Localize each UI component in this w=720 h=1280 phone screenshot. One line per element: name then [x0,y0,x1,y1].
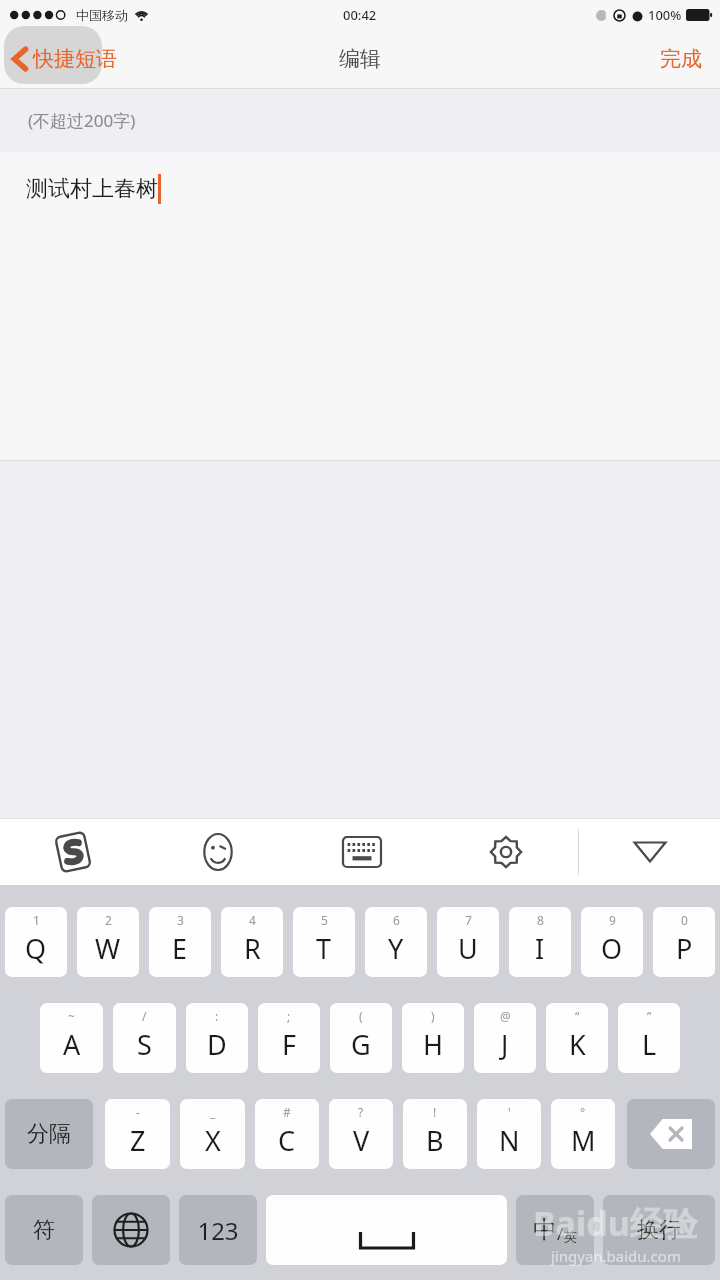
button[interactable]: ~ [40,1003,103,1073]
staticText: I [535,930,545,967]
staticText: F [282,1026,297,1063]
staticText: 123 [197,1214,239,1247]
button[interactable]: ” [618,1003,680,1073]
staticText: 快捷短语 [33,46,117,72]
staticText: 编辑 [339,46,381,72]
staticText: P [676,930,693,967]
button[interactable]: # [255,1099,319,1169]
staticText: 符 [33,1216,55,1244]
staticText: Y [388,930,404,967]
button[interactable]: 8 [509,907,571,977]
staticText: 中 [533,1215,557,1245]
staticText: 00:42 [343,6,377,24]
staticText: ° [580,1104,586,1120]
staticText: / [142,1008,147,1024]
staticText: N [499,1122,520,1159]
staticText: L [642,1026,657,1063]
button[interactable]: 7 [437,907,499,977]
button[interactable]: “ [546,1003,608,1073]
staticText: 8 [537,912,544,928]
staticText: 7 [465,912,472,928]
button[interactable]: 3 [149,907,211,977]
staticText: Z [130,1122,146,1159]
staticText: 测试村上春树 [26,175,158,203]
staticText: 英 [564,1228,577,1244]
button[interactable]: ; [258,1003,320,1073]
staticText: E [172,930,188,967]
staticText: O [601,930,623,967]
button[interactable]: 符 [5,1195,83,1265]
button[interactable]: Space [266,1195,507,1265]
staticText: ; [287,1008,291,1024]
staticText: U [458,930,478,967]
button[interactable]: Hide keyboard [579,819,720,885]
staticText: @ [500,1008,511,1024]
staticText: ” [647,1008,652,1024]
staticText: 6 [393,912,400,928]
staticText: (不超过200字) [28,109,136,132]
staticText: K [569,1026,586,1063]
button[interactable]: _ [180,1099,245,1169]
staticText: 0 [681,912,688,928]
staticText: 分隔 [27,1120,71,1148]
button[interactable]: Settings [434,819,578,885]
staticText: C [278,1122,296,1159]
staticText: Q [25,930,47,967]
button[interactable]: 分隔 [5,1099,93,1169]
button[interactable]: 9 [581,907,643,977]
button[interactable]: 中 [516,1195,594,1265]
button[interactable]: @ [474,1003,536,1073]
staticText: / [557,1222,564,1245]
button[interactable]: Backspace [627,1099,715,1169]
button[interactable]: / [113,1003,176,1073]
button[interactable]: ° [551,1099,615,1169]
staticText: “ [575,1008,580,1024]
button[interactable]: 完成 [642,38,720,80]
staticText: Baidu经验 [533,1200,698,1246]
staticText: 3 [177,912,184,928]
staticText: J [501,1026,509,1063]
staticText: 中国移动 [76,7,128,23]
button[interactable]: ' [477,1099,541,1169]
staticText: W [95,930,121,967]
staticText: A [63,1026,81,1063]
button[interactable]: ) [402,1003,464,1073]
button[interactable]: Keyboard [290,819,434,885]
staticText: T [316,930,332,967]
staticText: 换行 [637,1216,681,1244]
button[interactable]: Emoji [146,819,290,885]
button[interactable]: 5 [293,907,355,977]
staticText: ? [358,1104,364,1120]
button[interactable]: 2 [77,907,139,977]
staticText: 2 [105,912,112,928]
staticText: 5 [321,912,328,928]
staticText: V [353,1122,370,1159]
button[interactable]: 快捷短语 [0,40,127,78]
button[interactable]: 0 [653,907,715,977]
button[interactable]: 123 [179,1195,257,1265]
staticText: ( [359,1008,363,1024]
button[interactable]: 6 [365,907,427,977]
staticText: 9 [609,912,616,928]
staticText: B [426,1122,444,1159]
button[interactable]: ! [403,1099,467,1169]
staticText: ~ [68,1008,75,1024]
staticText: 1 [33,912,40,928]
button[interactable]: Sogou input [0,819,146,885]
button[interactable]: 换行 [603,1195,715,1265]
staticText: R [244,930,261,967]
staticText: H [423,1026,444,1063]
staticText: jingyan.baidu.com [551,1246,681,1266]
button[interactable]: Switch language [92,1195,170,1265]
button[interactable]: ? [329,1099,393,1169]
staticText: G [351,1026,371,1063]
staticText: D [207,1026,227,1063]
button[interactable]: 1 [5,907,67,977]
staticText: S [137,1026,152,1063]
button[interactable]: ( [330,1003,392,1073]
staticText: 完成 [660,46,702,72]
button[interactable]: 4 [221,907,283,977]
button[interactable]: - [105,1099,170,1169]
staticText: ) [431,1008,435,1024]
button[interactable]: : [186,1003,248,1073]
